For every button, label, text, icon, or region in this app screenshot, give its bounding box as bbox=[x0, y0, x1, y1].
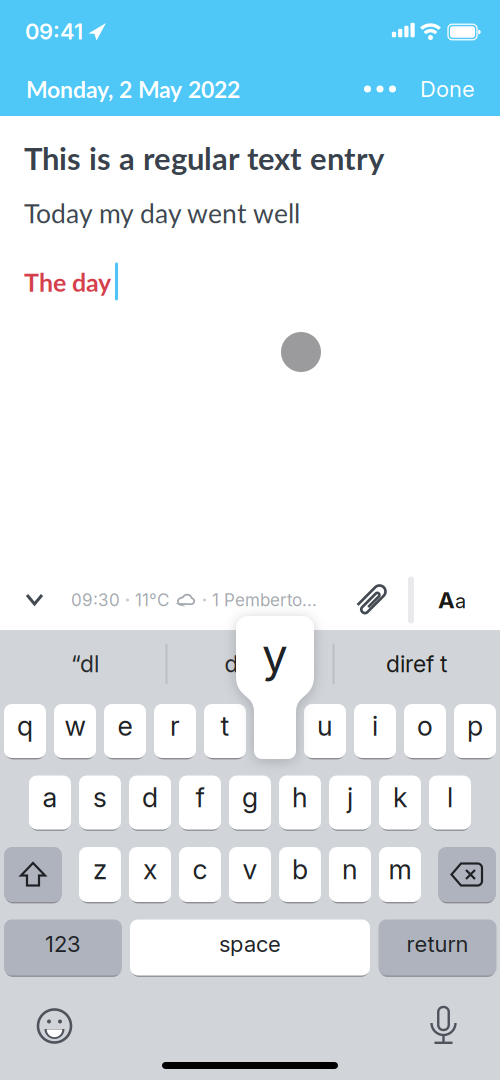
button[interactable]: Collapse keyboard bbox=[24, 589, 44, 609]
staticText: Aa bbox=[438, 587, 466, 613]
staticText: o bbox=[417, 710, 433, 742]
button[interactable]: Done bbox=[420, 76, 475, 102]
button[interactable]: d bbox=[129, 775, 171, 829]
staticText: u bbox=[317, 710, 333, 742]
button[interactable]: n bbox=[329, 847, 371, 902]
staticText: day bbox=[224, 650, 263, 678]
button[interactable]: b bbox=[279, 847, 321, 902]
staticText: 09:41 bbox=[25, 18, 83, 45]
staticText: a bbox=[42, 781, 57, 814]
staticText: 09:30 bbox=[71, 590, 120, 610]
button[interactable]: Emoji bbox=[36, 1008, 72, 1044]
button[interactable]: r bbox=[154, 704, 196, 758]
button[interactable]: day bbox=[224, 650, 263, 678]
staticText: n bbox=[342, 853, 358, 886]
button[interactable]: “dl bbox=[71, 650, 99, 678]
staticText: y bbox=[262, 627, 288, 683]
staticText: x bbox=[143, 853, 157, 886]
staticText: h bbox=[292, 781, 308, 814]
button[interactable]: More bbox=[364, 85, 396, 92]
button[interactable]: o bbox=[404, 704, 446, 758]
button[interactable]: w bbox=[54, 704, 96, 758]
staticText: Done bbox=[420, 76, 475, 102]
button[interactable]: e bbox=[104, 704, 146, 758]
staticText: 1 Pemberto... bbox=[212, 590, 317, 610]
button[interactable]: h bbox=[279, 775, 321, 829]
button[interactable]: l bbox=[429, 775, 471, 829]
staticText: l bbox=[447, 781, 453, 814]
button[interactable]: f bbox=[179, 775, 221, 829]
staticText: return bbox=[406, 931, 468, 957]
staticText: 123 bbox=[45, 931, 81, 957]
staticText: Monday, 2 May 2022 bbox=[26, 75, 240, 103]
button[interactable]: return bbox=[378, 919, 496, 975]
staticText: p bbox=[467, 710, 483, 742]
staticText: i bbox=[372, 710, 378, 742]
staticText: b bbox=[292, 853, 308, 886]
button[interactable]: Text formatting bbox=[438, 587, 466, 613]
staticText: space bbox=[219, 931, 281, 957]
staticText: w bbox=[64, 710, 85, 742]
button[interactable]: v bbox=[229, 847, 271, 902]
staticText: This is a regular text entry bbox=[24, 139, 384, 177]
staticText: z bbox=[93, 853, 107, 886]
staticText: “dl bbox=[71, 650, 99, 678]
button[interactable]: q bbox=[4, 704, 46, 758]
staticText: d bbox=[142, 781, 158, 814]
button[interactable]: m bbox=[379, 847, 421, 902]
staticText: s bbox=[93, 781, 107, 814]
button[interactable]: j bbox=[329, 775, 371, 829]
staticText: f bbox=[195, 781, 204, 814]
staticText: c bbox=[192, 853, 207, 886]
staticText: k bbox=[393, 781, 407, 814]
button[interactable]: t bbox=[204, 704, 246, 758]
button[interactable]: 123 bbox=[4, 919, 122, 975]
button[interactable]: z bbox=[79, 847, 121, 902]
button[interactable]: p bbox=[454, 704, 496, 758]
button[interactable]: a bbox=[29, 775, 71, 829]
button[interactable]: Attach photo bbox=[351, 578, 391, 622]
button[interactable]: Delete bbox=[438, 847, 496, 902]
button[interactable]: s bbox=[79, 775, 121, 829]
staticText: m bbox=[388, 853, 411, 886]
staticText: The day bbox=[24, 267, 111, 297]
staticText: j bbox=[347, 781, 353, 814]
button[interactable]: i bbox=[354, 704, 396, 758]
button[interactable]: k bbox=[379, 775, 421, 829]
staticText: g bbox=[242, 781, 258, 814]
staticText: 11°C bbox=[135, 590, 169, 610]
staticText: v bbox=[242, 853, 257, 886]
staticText: q bbox=[17, 710, 33, 742]
staticText: r bbox=[170, 710, 180, 742]
staticText: diref t bbox=[386, 650, 447, 677]
staticText: Today my day went well bbox=[24, 197, 300, 229]
button[interactable]: x bbox=[129, 847, 171, 902]
button[interactable]: space bbox=[130, 919, 370, 975]
button[interactable]: Dictate bbox=[428, 1000, 458, 1048]
button[interactable]: c bbox=[179, 847, 221, 902]
button[interactable]: g bbox=[229, 775, 271, 829]
button[interactable]: u bbox=[304, 704, 346, 758]
staticText: e bbox=[117, 710, 132, 742]
staticText: t bbox=[220, 710, 229, 742]
button[interactable]: diref t bbox=[386, 650, 447, 677]
button[interactable]: Shift bbox=[4, 847, 62, 902]
